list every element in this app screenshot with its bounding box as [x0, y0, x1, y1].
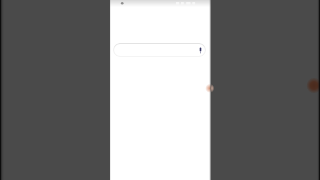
button[interactable]: Voice search: [197, 47, 204, 54]
button[interactable]: Voice search: [113, 43, 206, 57]
